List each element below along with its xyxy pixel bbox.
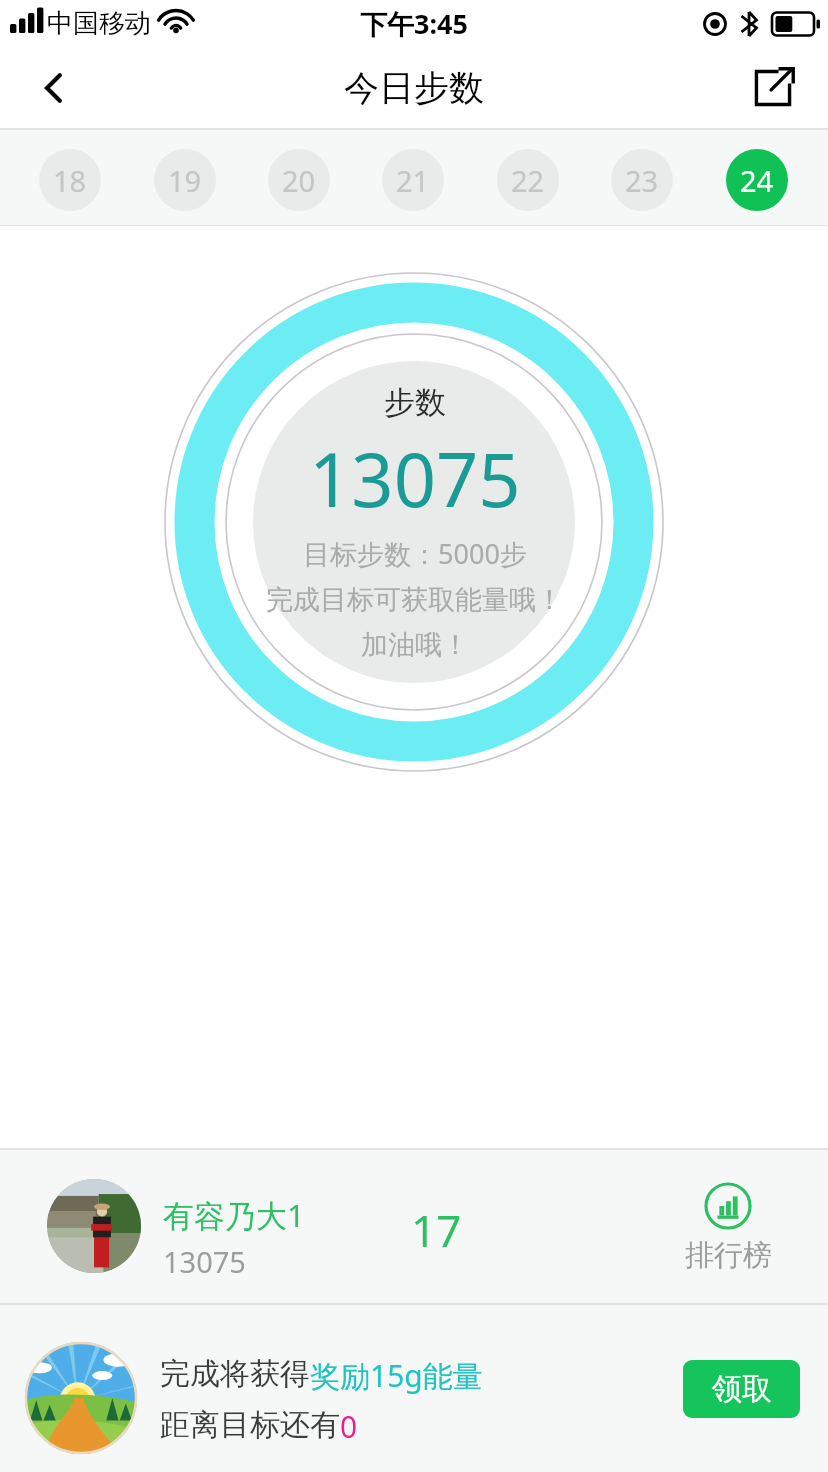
staticText: 23 [625,161,659,200]
staticText: 领取 [712,1370,772,1408]
button[interactable]: 23 [611,149,673,211]
staticText: 17 [411,1200,462,1260]
staticText: 排行榜 [685,1237,772,1274]
button[interactable]: 领取 [683,1360,800,1418]
button[interactable]: 21 [382,149,444,211]
staticText: 步数 [384,383,446,422]
staticText: 完成目标可获取能量哦！ [266,583,563,617]
staticText: 19 [168,161,202,200]
staticText: 完成将获得 [160,1355,310,1393]
staticText: 中国移动 [47,7,151,40]
staticText: 21 [396,161,430,200]
staticText: 距离目标还有 [160,1406,340,1444]
staticText: 18 [53,161,87,200]
staticText: 下午3:45 [360,5,468,42]
button[interactable]: 18 [39,149,101,211]
button[interactable]: 19 [154,149,216,211]
staticText: 0 [340,1406,358,1447]
button[interactable]: Share [718,48,828,128]
staticText: 加油哦！ [361,628,469,662]
button[interactable]: 24 [726,149,788,211]
staticText: 今日步数 [344,66,484,110]
button[interactable]: 有容乃大1 [0,1150,828,1303]
staticText: 20 [282,161,316,200]
button[interactable]: 20 [268,149,330,211]
staticText: 24 [740,161,774,200]
staticText: 22 [511,161,545,200]
staticText: 13075 [309,428,521,529]
button[interactable]: Back [0,48,110,128]
staticText: 奖励15g能量 [310,1355,483,1396]
staticText: 目标步数：5000步 [303,535,527,572]
button[interactable]: 22 [497,149,559,211]
staticText: 有容乃大1 [163,1194,305,1236]
button[interactable]: 排行榜 [682,1182,774,1274]
staticText: 13075 [163,1242,246,1281]
